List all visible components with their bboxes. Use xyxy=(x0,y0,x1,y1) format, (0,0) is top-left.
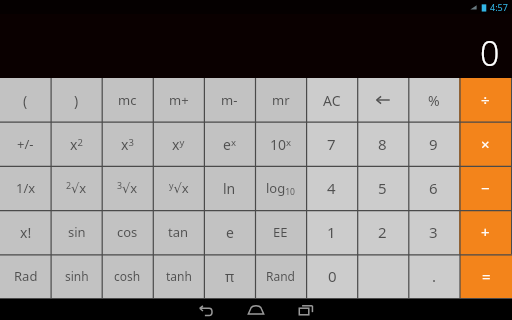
staticText: xy xyxy=(172,135,185,154)
button[interactable]: plus xyxy=(459,210,511,254)
staticText: ln xyxy=(223,179,236,198)
button[interactable]: e to the x xyxy=(204,122,255,166)
button[interactable]: all clear xyxy=(306,78,357,122)
staticText: 9 xyxy=(429,134,438,154)
staticText: 3 xyxy=(429,222,438,242)
button[interactable]: divide xyxy=(459,78,511,122)
staticText: m+ xyxy=(169,91,189,109)
staticText: 6 xyxy=(429,178,438,198)
staticText: 7 xyxy=(327,134,336,154)
button[interactable]: ten to the x xyxy=(255,122,306,166)
staticText: ÷ xyxy=(481,90,490,110)
staticText: +/- xyxy=(17,135,34,153)
button[interactable]: left parenthesis xyxy=(0,78,51,122)
staticText: π xyxy=(225,267,235,286)
staticText: 2√x xyxy=(66,179,87,197)
staticText: = xyxy=(482,266,491,286)
staticText: 0 xyxy=(480,30,500,76)
button[interactable]: x squared xyxy=(51,122,102,166)
button[interactable]: radians xyxy=(0,254,51,298)
staticText: x2 xyxy=(70,135,83,154)
staticText: y√x xyxy=(169,179,189,197)
button[interactable]: cosine xyxy=(102,210,153,254)
button[interactable]: zero xyxy=(306,254,409,298)
staticText: sin xyxy=(68,223,86,241)
staticText: cos xyxy=(117,223,138,241)
button[interactable]: memory clear xyxy=(102,78,153,122)
button[interactable]: equals xyxy=(460,254,512,298)
button[interactable]: memory recall xyxy=(255,78,306,122)
staticText: 2 xyxy=(378,222,387,242)
button[interactable]: plus minus xyxy=(0,122,51,166)
staticText: 10x xyxy=(270,135,292,154)
staticText: 8 xyxy=(378,134,387,154)
staticText: × xyxy=(481,134,490,154)
staticText: mr xyxy=(272,91,290,109)
staticText: tan xyxy=(168,223,189,241)
staticText: EE xyxy=(273,223,288,241)
button[interactable]: hyperbolic sine xyxy=(51,254,102,298)
staticText: e xyxy=(226,223,234,242)
staticText: Rand xyxy=(266,268,295,284)
staticText: . xyxy=(432,266,437,286)
staticText: % xyxy=(428,91,440,110)
staticText: 4 xyxy=(327,178,336,198)
button[interactable]: minus xyxy=(459,166,511,210)
button[interactable]: cube root xyxy=(102,166,153,210)
staticText: 4:57 xyxy=(490,1,508,13)
button[interactable]: Home xyxy=(238,300,274,320)
button[interactable]: factorial xyxy=(0,210,51,254)
button[interactable]: log base ten xyxy=(255,166,306,210)
button[interactable]: percent xyxy=(408,78,459,122)
staticText: m- xyxy=(221,91,238,109)
button[interactable]: memory minus xyxy=(204,78,255,122)
button[interactable]: three xyxy=(408,210,459,254)
staticText: 5 xyxy=(378,178,387,198)
button[interactable]: eight xyxy=(357,122,408,166)
staticText: 3√x xyxy=(117,179,138,197)
button[interactable]: euler number xyxy=(204,210,255,254)
staticText: 1/x xyxy=(16,179,36,197)
button[interactable]: x cubed xyxy=(102,122,153,166)
staticText: x! xyxy=(20,223,32,242)
button[interactable]: random xyxy=(255,254,306,298)
button[interactable]: natural log xyxy=(204,166,255,210)
button[interactable]: square root xyxy=(51,166,102,210)
staticText: x3 xyxy=(121,135,134,154)
button[interactable]: pi xyxy=(204,254,255,298)
button[interactable]: sine xyxy=(51,210,102,254)
button[interactable]: backspace xyxy=(357,78,408,122)
staticText: Rad xyxy=(14,267,38,285)
staticText: mc xyxy=(118,91,137,109)
button[interactable]: two xyxy=(357,210,408,254)
button[interactable]: multiply xyxy=(459,122,511,166)
staticText: sinh xyxy=(65,268,89,284)
button[interactable]: five xyxy=(357,166,408,210)
button[interactable]: one over x xyxy=(0,166,51,210)
button[interactable]: six xyxy=(408,166,459,210)
staticText: tanh xyxy=(166,268,192,284)
button[interactable]: tangent xyxy=(153,210,204,254)
staticText: − xyxy=(481,178,490,198)
button[interactable]: memory plus xyxy=(153,78,204,122)
button[interactable]: nine xyxy=(408,122,459,166)
button[interactable]: one xyxy=(306,210,357,254)
button[interactable]: hyperbolic cosine xyxy=(102,254,153,298)
staticText: ) xyxy=(74,91,79,110)
button[interactable]: Recent apps xyxy=(288,300,324,320)
button[interactable]: seven xyxy=(306,122,357,166)
button[interactable]: right parenthesis xyxy=(51,78,102,122)
button[interactable]: x to the y xyxy=(153,122,204,166)
button[interactable]: four xyxy=(306,166,357,210)
staticText: 1 xyxy=(327,222,336,242)
button[interactable]: Back xyxy=(188,300,224,320)
staticText: log10 xyxy=(266,179,296,198)
button[interactable]: hyperbolic tangent xyxy=(153,254,204,298)
staticText: + xyxy=(481,222,490,242)
staticText: ( xyxy=(23,91,28,110)
staticText: ex xyxy=(223,135,236,154)
button[interactable]: exponent xyxy=(255,210,306,254)
staticText: 0 xyxy=(328,266,337,286)
button[interactable]: y root x xyxy=(153,166,204,210)
button[interactable]: decimal point xyxy=(409,254,460,298)
